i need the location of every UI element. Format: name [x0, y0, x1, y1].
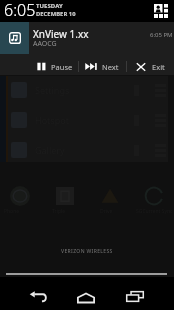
- button[interactable]: Exit: [127, 58, 174, 75]
- button[interactable]: Next: [79, 58, 126, 75]
- staticText: 6:05 PM: [150, 31, 173, 39]
- staticText: TUESDAY: [36, 2, 63, 10]
- staticText: Pause: [51, 62, 73, 72]
- button[interactable]: Pause: [29, 58, 78, 75]
- staticText: Exit: [152, 62, 165, 72]
- button[interactable]: Back: [20, 277, 56, 310]
- staticText: 6:05: [4, 0, 36, 21]
- staticText: AAOCG: [33, 39, 57, 49]
- staticText: Next: [102, 62, 119, 72]
- button[interactable]: Quick settings: [153, 3, 169, 19]
- button[interactable]: Recent apps: [117, 277, 153, 310]
- staticText: DECEMBER 10: [36, 10, 76, 18]
- button[interactable]: Home: [68, 277, 104, 310]
- staticText: XnView 1.xx: [33, 27, 89, 41]
- staticText: VERIZON WIRELESS: [61, 248, 113, 255]
